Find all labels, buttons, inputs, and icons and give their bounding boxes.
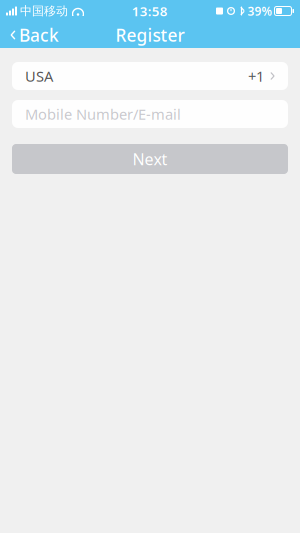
staticText: 39% [247,3,272,19]
button[interactable]: USA [12,62,288,90]
staticText: +1 [248,66,264,86]
staticText: USA [25,66,53,86]
button[interactable]: Back [0,19,69,50]
staticText: 中国移动 [20,4,68,18]
staticText: Next [132,148,167,170]
staticText: Mobile Number/E-mail [25,104,181,124]
staticText: Register [115,23,184,46]
button[interactable]: Next [12,144,288,174]
staticText: Back [19,23,59,46]
button[interactable]: Mobile Number/E-mail [12,100,288,128]
staticText: 13:58 [132,2,168,20]
